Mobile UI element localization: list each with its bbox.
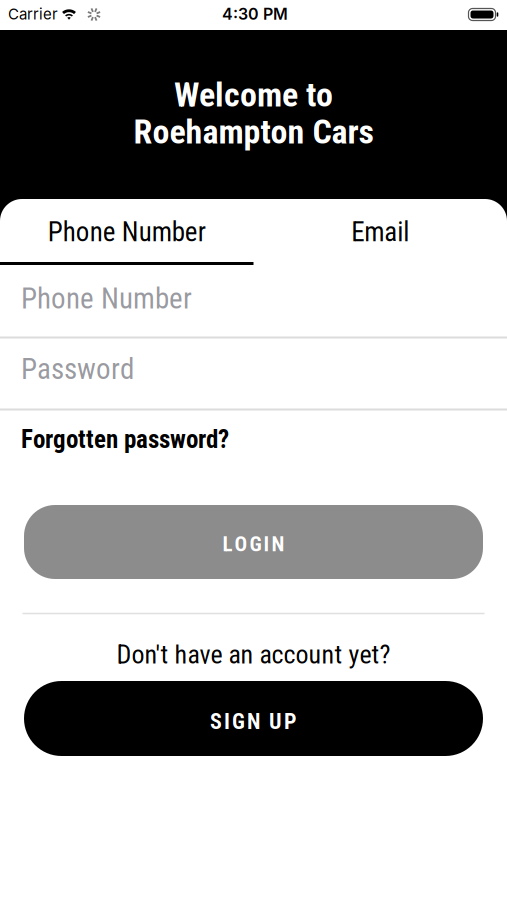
staticText: Phone Number [48,216,206,248]
staticText: Password [21,352,134,386]
staticText: Carrier [8,5,58,23]
button[interactable]: Phone Number [0,200,253,264]
staticText: L O G I N [222,532,284,556]
button[interactable]: Email [253,200,507,264]
staticText: Phone Number [21,281,192,315]
button[interactable]: Password [0,334,507,404]
button[interactable]: LOGIN [24,505,483,579]
button[interactable]: SIGN UP [24,681,483,756]
staticText: 4:30 PM [222,4,288,24]
staticText: Email [351,216,409,248]
staticText: S I G N U P [210,709,297,734]
staticText: Roehampton Cars [133,112,373,152]
staticText: Welcome to [174,75,333,115]
button[interactable]: Phone Number [0,263,507,333]
button[interactable]: Forgotten password? [21,425,229,454]
staticText: Don't have an account yet? [116,639,390,670]
staticText: Forgotten password? [21,425,229,454]
